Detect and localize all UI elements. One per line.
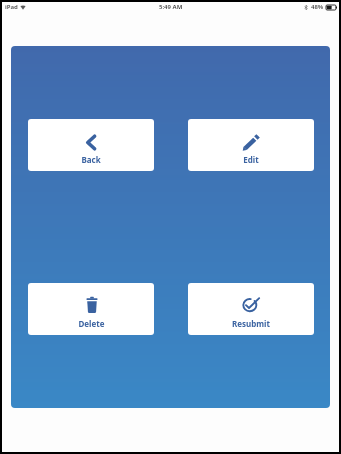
staticText: 5:49 AM bbox=[159, 3, 183, 11]
staticText: Delete bbox=[78, 318, 105, 329]
staticText: Back bbox=[81, 154, 101, 165]
button[interactable]: Edit bbox=[188, 119, 314, 171]
other: Resubmit bbox=[242, 298, 260, 315]
staticText: 48% bbox=[311, 3, 324, 11]
other: Back bbox=[82, 134, 100, 151]
button[interactable]: Delete bbox=[28, 283, 154, 335]
staticText: iPad bbox=[5, 3, 18, 11]
other: Edit bbox=[242, 134, 260, 151]
button[interactable]: Back bbox=[28, 119, 154, 171]
staticText: Resubmit bbox=[232, 318, 270, 329]
other: Delete bbox=[83, 298, 101, 315]
button[interactable]: Resubmit bbox=[188, 283, 314, 335]
staticText: Edit bbox=[243, 154, 259, 165]
